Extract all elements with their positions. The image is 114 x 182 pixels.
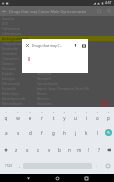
button[interactable]: x	[22, 141, 33, 158]
button[interactable]: Home	[94, 6, 104, 16]
staticText: Finasteride	[2, 47, 18, 51]
button[interactable]: 5	[48, 107, 59, 124]
button[interactable]: Diazepam	[0, 66, 114, 71]
button[interactable]: Emoji	[102, 158, 114, 174]
staticText: k	[85, 130, 88, 136]
staticText: ,	[19, 163, 21, 169]
button[interactable]: Home	[53, 174, 61, 182]
staticText: !	[88, 147, 90, 153]
button[interactable]: 9	[92, 107, 103, 124]
staticText: g	[52, 130, 55, 136]
button[interactable]: Digitalis	[0, 71, 114, 76]
staticText: o	[92, 115, 103, 121]
button[interactable]: g	[48, 124, 59, 141]
button[interactable]: ,	[16, 158, 23, 174]
button[interactable]: Voice search	[71, 39, 79, 52]
staticText: Dapsone	[2, 17, 15, 21]
staticText: p	[103, 115, 114, 121]
button[interactable]: Search	[103, 124, 114, 141]
staticText: Diazepam	[2, 67, 17, 71]
staticText: Drugs that may C...	[32, 43, 71, 48]
button[interactable]: z	[11, 141, 22, 158]
button[interactable]: Add	[100, 99, 109, 108]
button[interactable]: ?123	[0, 158, 16, 174]
staticText: a	[5, 130, 8, 136]
button[interactable]: Close	[22, 39, 32, 52]
button[interactable]: Methyldopa	[0, 91, 114, 96]
button[interactable]: Search by image	[79, 39, 88, 52]
button[interactable]: Backspace	[104, 141, 114, 158]
button[interactable]: 6	[59, 107, 70, 124]
button[interactable]: c	[33, 141, 44, 158]
staticText: c	[37, 147, 40, 153]
staticText: b	[58, 147, 61, 153]
button[interactable]: Search	[104, 6, 114, 16]
button[interactable]: Metoclopramide	[0, 96, 114, 101]
staticText: z	[15, 147, 18, 153]
staticText: v	[48, 147, 51, 153]
staticText: Metronidazole	[2, 102, 23, 106]
button[interactable]: Ethionamide	[0, 81, 114, 86]
staticText: r	[36, 115, 48, 121]
staticText: q	[0, 115, 12, 121]
button[interactable]: 7	[70, 107, 81, 124]
staticText: 9	[92, 111, 103, 114]
button[interactable]: Danazol	[0, 61, 114, 66]
button[interactable]: 8	[81, 107, 92, 124]
staticText: Nicotine	[37, 97, 49, 101]
button[interactable]: l	[92, 124, 103, 141]
button[interactable]: 3	[24, 107, 36, 124]
staticText: u	[70, 115, 81, 121]
button[interactable]: Back	[24, 174, 32, 182]
button[interactable]: Metronidazole	[0, 101, 114, 106]
button[interactable]: Cimetidine	[0, 51, 114, 56]
button[interactable]: Recent apps	[82, 174, 90, 182]
staticText: 4:57	[105, 1, 112, 5]
staticText: 6	[59, 111, 70, 114]
button[interactable]: d	[24, 124, 36, 141]
button[interactable]: v	[44, 141, 54, 158]
button[interactable]: n	[64, 141, 74, 158]
button[interactable]: 0	[103, 107, 114, 124]
staticText: Cimetidine	[2, 52, 18, 56]
button[interactable]: s	[12, 124, 24, 141]
staticText: t	[48, 115, 59, 121]
button[interactable]: Finasteride	[0, 46, 114, 51]
button[interactable]: j	[70, 124, 81, 141]
button[interactable]: Back	[0, 6, 9, 16]
button[interactable]: ?	[94, 141, 104, 158]
button[interactable]: m	[74, 141, 84, 158]
button[interactable]: Estrogen	[0, 76, 114, 81]
staticText: ?123	[5, 164, 12, 168]
staticText: Sulfonylureas	[2, 32, 22, 36]
button[interactable]: Clomiphene	[0, 56, 114, 61]
button[interactable]: Chlorpromazine	[0, 41, 114, 46]
button[interactable]: !	[84, 141, 94, 158]
button[interactable]: Flutamide	[0, 86, 114, 91]
button[interactable]: 2	[12, 107, 24, 124]
staticText: Sulfasalazine	[2, 27, 21, 31]
staticText: Estrogen	[2, 77, 15, 81]
button[interactable]: 4	[36, 107, 48, 124]
button[interactable]: h	[59, 124, 70, 141]
staticText: Aminoglutethimide	[2, 37, 30, 41]
staticText: Ranitidine	[37, 72, 52, 76]
button[interactable]: 1	[0, 107, 12, 124]
button[interactable]: b	[54, 141, 64, 158]
staticText: Ethionamide	[2, 82, 20, 86]
staticText: e	[24, 115, 36, 121]
button[interactable]: f	[36, 124, 48, 141]
staticText: 5	[48, 111, 59, 114]
button[interactable]: Shift	[0, 141, 11, 158]
staticText: 7	[70, 111, 81, 114]
button[interactable]: k	[81, 124, 92, 141]
staticText: Danazol	[2, 62, 14, 66]
button[interactable]: a	[0, 124, 12, 141]
button[interactable]: Aminoglutethimide	[0, 36, 114, 41]
